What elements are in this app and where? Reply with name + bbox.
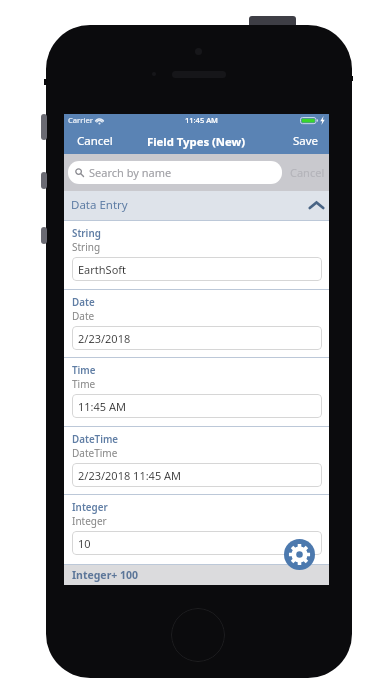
staticText: Cancel [290,165,325,180]
button[interactable]: Data Entry [64,191,329,220]
staticText: 11:45 AM [78,399,126,414]
button[interactable]: String [64,221,329,289]
staticText: DateTime [72,446,118,460]
staticText: Search by name [89,165,172,180]
staticText: Cancel [77,133,113,149]
staticText: Integer+ 100 [72,568,139,582]
button[interactable]: Integer [64,495,329,562]
button[interactable]: Settings [284,539,315,570]
staticText: Carrier [68,115,93,125]
staticText: Date [72,309,95,323]
button[interactable]: EarthSoft [72,257,322,281]
button[interactable]: DateTime [64,427,329,494]
staticText: DateTime [72,433,119,446]
staticText: Field Types (New) [147,134,246,149]
staticText: Save [293,133,319,149]
button[interactable]: Save [285,126,329,154]
staticText: String [72,227,101,240]
button[interactable]: 2/23/2018 [72,326,322,350]
button[interactable]: Cancel [64,126,121,154]
staticText: EarthSoft [78,262,127,277]
staticText: String [72,240,101,254]
staticText: 2/23/2018 [78,331,131,346]
staticText: Data Entry [71,197,128,213]
staticText: 11:45 AM [185,115,218,125]
button[interactable]: Integer+ 100 [64,565,329,585]
button[interactable]: Cancel [282,161,325,184]
button[interactable]: Time [64,358,329,426]
staticText: Time [72,364,96,377]
staticText: 10 [78,536,91,551]
button[interactable]: 10 [72,531,322,555]
button[interactable]: Search by name [68,161,282,184]
button[interactable]: Date [64,290,329,357]
staticText: Integer [72,501,108,514]
button[interactable]: 11:45 AM [72,394,322,418]
staticText: Date [72,296,95,309]
staticText: 2/23/2018 11:45 AM [78,468,182,483]
button[interactable]: 2/23/2018 11:45 AM [72,463,322,487]
staticText: Integer [72,514,107,528]
staticText: Time [72,377,96,391]
